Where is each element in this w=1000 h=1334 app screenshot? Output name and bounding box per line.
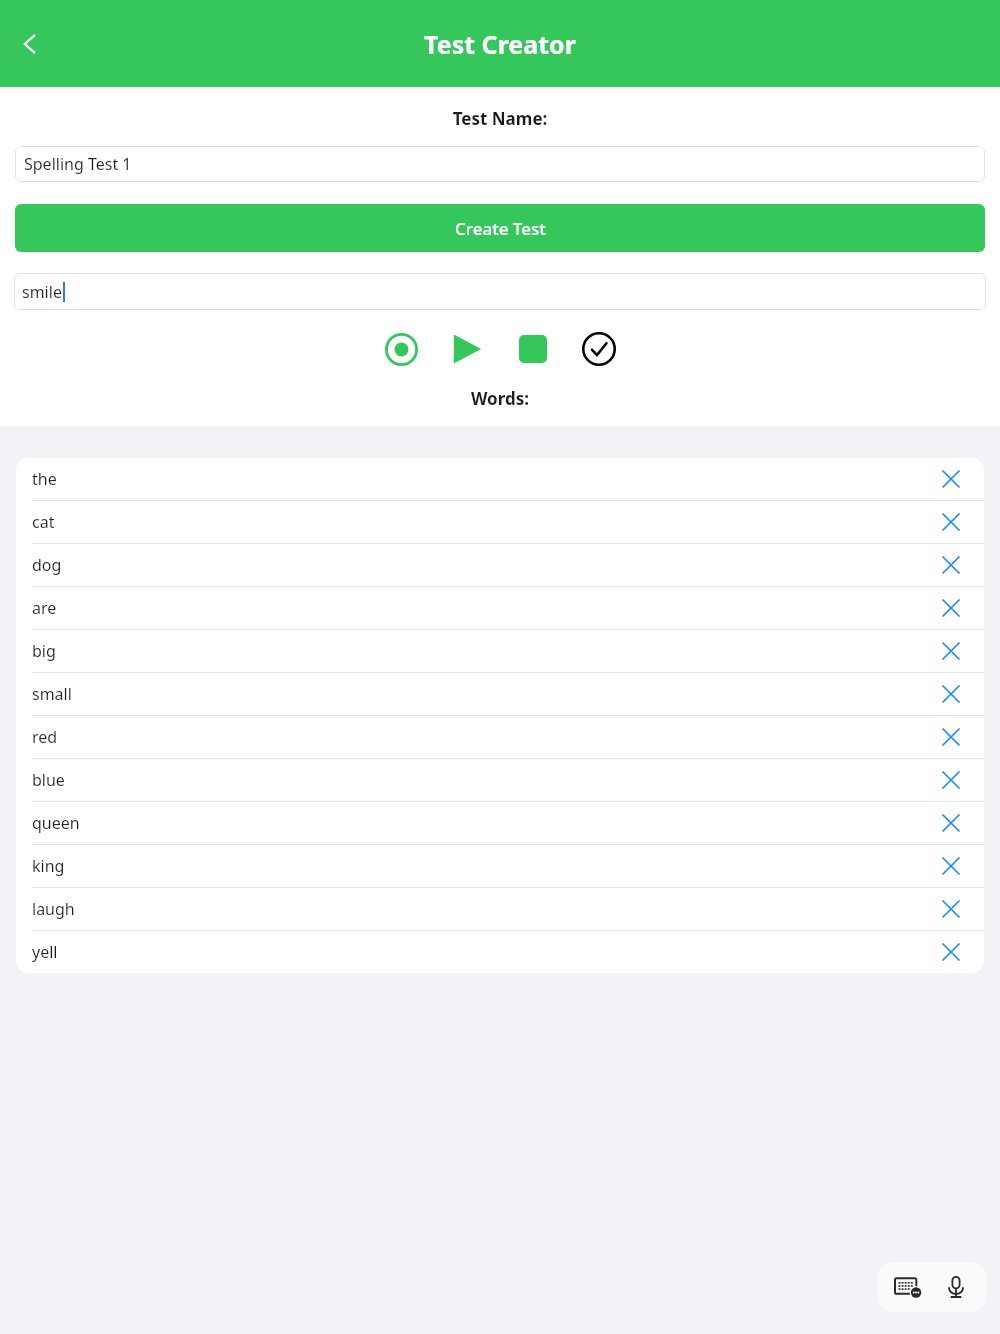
staticText: big (32, 640, 56, 662)
button[interactable]: yell (16, 931, 984, 973)
staticText: the (32, 468, 57, 490)
staticText: red (32, 726, 58, 748)
staticText: small (32, 683, 72, 705)
button[interactable]: Remove laugh (930, 888, 972, 930)
staticText: smile (22, 281, 62, 303)
button[interactable]: Remove queen (930, 802, 972, 844)
button[interactable]: laugh (16, 888, 984, 930)
staticText: Words: (0, 387, 1000, 410)
staticText: dog (32, 554, 62, 576)
button[interactable]: Spelling Test 1 (15, 146, 985, 182)
staticText: cat (32, 511, 55, 533)
staticText: laugh (32, 898, 75, 920)
button[interactable]: Remove small (930, 673, 972, 715)
button[interactable]: are (16, 587, 984, 629)
button[interactable]: red (16, 716, 984, 758)
button[interactable]: Play (445, 327, 489, 371)
button[interactable]: small (16, 673, 984, 715)
staticText: blue (32, 769, 65, 791)
button[interactable]: Remove blue (930, 759, 972, 801)
button[interactable]: the (16, 458, 984, 500)
button[interactable]: Remove red (930, 716, 972, 758)
button[interactable]: Create Test (15, 204, 985, 252)
button[interactable]: cat (16, 501, 984, 543)
button[interactable]: Confirm (577, 327, 621, 371)
button[interactable]: Remove big (930, 630, 972, 672)
button[interactable]: king (16, 845, 984, 887)
staticText: Test Creator (424, 27, 576, 61)
button[interactable]: Remove dog (930, 544, 972, 586)
button[interactable]: Input method (878, 1262, 986, 1312)
button[interactable]: Record (379, 327, 423, 371)
staticText: king (32, 855, 65, 877)
button[interactable]: Remove are (930, 587, 972, 629)
button[interactable]: Remove king (930, 845, 972, 887)
button[interactable]: blue (16, 759, 984, 801)
staticText: Test Name: (0, 107, 1000, 130)
button[interactable]: Remove yell (930, 931, 972, 973)
button[interactable]: dog (16, 544, 984, 586)
button[interactable]: smile (14, 273, 986, 310)
staticText: Create Test (455, 217, 546, 240)
button[interactable]: big (16, 630, 984, 672)
staticText: yell (32, 941, 58, 963)
staticText: queen (32, 812, 80, 834)
staticText: are (32, 597, 57, 619)
button[interactable]: Remove cat (930, 501, 972, 543)
button[interactable]: Stop (511, 327, 555, 371)
button[interactable]: Voice input (939, 1270, 973, 1304)
button[interactable]: Switch keyboard (891, 1270, 925, 1304)
button[interactable]: queen (16, 802, 984, 844)
button[interactable]: Back (4, 18, 56, 70)
staticText: Spelling Test 1 (24, 153, 132, 175)
button[interactable]: Remove the (930, 458, 972, 500)
